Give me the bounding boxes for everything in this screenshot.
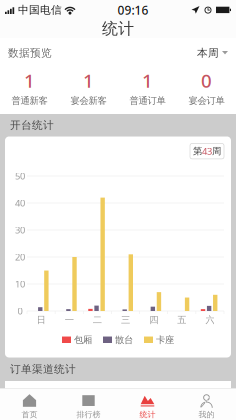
- staticText: 50: [15, 170, 25, 182]
- button[interactable]: 首页: [0, 389, 59, 420]
- staticText: 统计: [102, 19, 134, 39]
- staticText: 卡座: [156, 334, 174, 345]
- staticText: 五: [177, 314, 186, 326]
- staticText: 1: [142, 68, 153, 93]
- button[interactable]: 本周: [189, 42, 228, 63]
- staticText: 第: [193, 145, 202, 157]
- staticText: 包厢: [74, 334, 92, 345]
- staticText: 六: [205, 314, 214, 326]
- staticText: 订单渠道统计: [10, 363, 76, 376]
- staticText: 周: [212, 145, 221, 157]
- staticText: 数据预览: [8, 46, 52, 59]
- staticText: 0: [17, 305, 22, 317]
- staticText: 30: [15, 224, 25, 236]
- staticText: 宴会新客: [70, 95, 106, 106]
- button[interactable]: 我的: [177, 389, 236, 420]
- staticText: 排行榜: [76, 410, 100, 419]
- button[interactable]: 排行榜: [59, 389, 118, 420]
- staticText: 日: [37, 314, 46, 326]
- staticText: 本周: [197, 46, 219, 59]
- staticText: 首页: [21, 410, 37, 419]
- staticText: 0: [201, 68, 212, 93]
- staticText: 我的: [198, 410, 214, 419]
- staticText: 10: [15, 278, 25, 290]
- staticText: 三: [121, 314, 130, 326]
- staticText: 1: [24, 68, 35, 93]
- staticText: 宴会订单: [188, 95, 224, 106]
- staticText: 统计: [139, 410, 155, 419]
- staticText: 40: [15, 197, 25, 209]
- staticText: 普通订单: [129, 95, 165, 106]
- staticText: 43: [202, 145, 212, 157]
- staticText: 20: [15, 251, 25, 263]
- staticText: 09:16: [117, 2, 148, 18]
- staticText: 一: [65, 314, 74, 326]
- staticText: 1: [83, 68, 94, 93]
- staticText: 开台统计: [10, 119, 54, 132]
- staticText: 四: [149, 314, 158, 326]
- button[interactable]: 统计: [118, 389, 177, 420]
- staticText: 散台: [115, 334, 133, 345]
- staticText: 中国电信: [18, 3, 62, 16]
- staticText: 普通新客: [11, 95, 47, 106]
- staticText: 二: [93, 314, 102, 326]
- button[interactable]: 第: [190, 143, 224, 159]
